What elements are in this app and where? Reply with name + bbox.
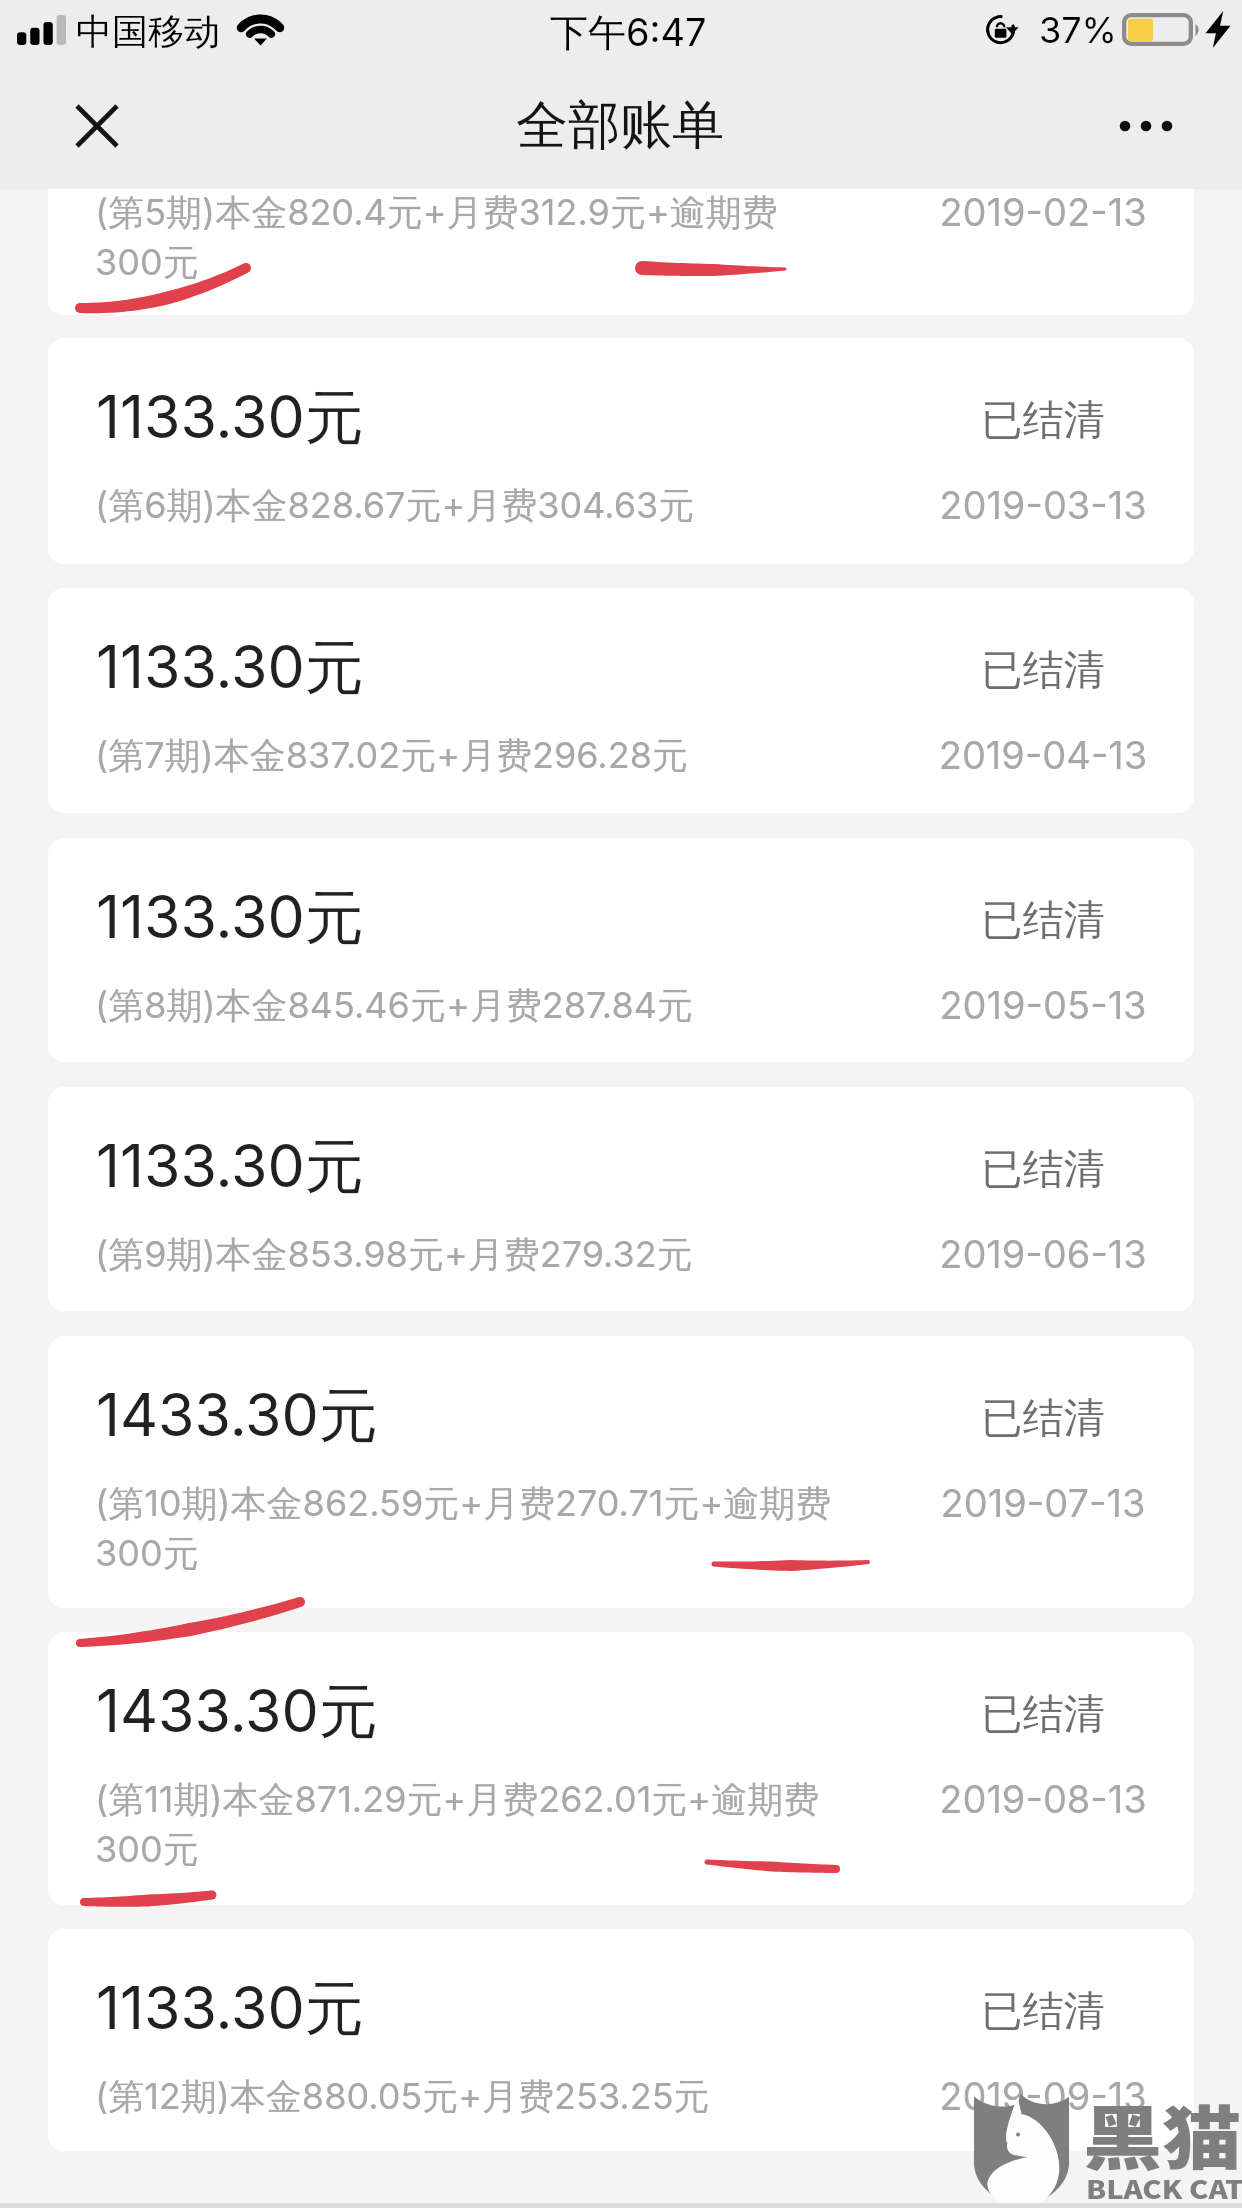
staticText: (第6期)本金828.67元+月费304.63元 [95, 483, 695, 529]
button[interactable]: 1133.30元 [48, 338, 1194, 564]
staticText: 1433.30元 [96, 1675, 378, 1750]
staticText: 1133.30元 [96, 631, 364, 706]
staticText: (第12期)本金880.05元+月费253.25元 [95, 2074, 710, 2120]
staticText: 2019-03-13 [918, 482, 1168, 528]
button[interactable]: 1133.30元 [48, 1087, 1194, 1311]
staticText: 中国移动 [76, 9, 220, 54]
staticText: 2019-06-13 [918, 1231, 1168, 1277]
staticText: 2019-02-13 [918, 189, 1168, 235]
staticText: 300元 [95, 240, 199, 286]
button[interactable]: 1133.30元 [48, 588, 1194, 813]
staticText: (第10期)本金862.59元+月费270.71元+逾期费 [95, 1481, 832, 1527]
staticText: 300元 [95, 1827, 199, 1873]
button[interactable]: 1133.30元 [48, 45, 1194, 315]
staticText: 已结清 [918, 895, 1168, 947]
staticText: 已结清 [918, 1986, 1168, 2038]
staticText: 1433.30元 [96, 1379, 378, 1454]
staticText: 2019-08-13 [918, 1776, 1168, 1822]
staticText: (第7期)本金837.02元+月费296.28元 [95, 733, 688, 779]
staticText: 下午6:47 [550, 9, 707, 57]
staticText: 黑猫 [1083, 2083, 1242, 2183]
staticText: 1133.30元 [96, 88, 364, 163]
staticText: 1133.30元 [96, 1130, 364, 1205]
button[interactable]: 1133.30元 [48, 838, 1194, 1062]
button[interactable]: More options [1104, 84, 1188, 168]
staticText: 37% [1039, 8, 1117, 52]
button[interactable]: Close [55, 84, 139, 168]
staticText: 全部账单 [516, 93, 724, 159]
staticText: 已结清 [918, 102, 1168, 154]
staticText: 已结清 [918, 645, 1168, 697]
staticText: 2019-07-13 [918, 1480, 1168, 1526]
button[interactable]: 1133.30元 [48, 1929, 1194, 2151]
staticText: 300元 [95, 1531, 199, 1577]
staticText: (第8期)本金845.46元+月费287.84元 [95, 983, 693, 1029]
staticText: 1133.30元 [96, 381, 364, 456]
staticText: 已结清 [918, 395, 1168, 447]
button[interactable]: 1433.30元 [48, 1632, 1194, 1905]
staticText: 已结清 [918, 1144, 1168, 1196]
staticText: (第5期)本金820.4元+月费312.9元+逾期费 [95, 190, 778, 236]
staticText: 1133.30元 [96, 1972, 364, 2047]
staticText: 2019-04-13 [918, 732, 1168, 778]
staticText: BLACK CAT [1086, 2170, 1242, 2206]
staticText: (第11期)本金871.29元+月费262.01元+逾期费 [95, 1777, 820, 1823]
staticText: 2019-09-13 [918, 2073, 1168, 2119]
staticText: (第9期)本金853.98元+月费279.32元 [95, 1232, 693, 1278]
staticText: 2019-05-13 [918, 982, 1168, 1028]
staticText: 已结清 [918, 1689, 1168, 1741]
staticText: 已结清 [918, 1393, 1168, 1445]
staticText: 1133.30元 [96, 881, 364, 956]
button[interactable]: 1433.30元 [48, 1336, 1194, 1608]
